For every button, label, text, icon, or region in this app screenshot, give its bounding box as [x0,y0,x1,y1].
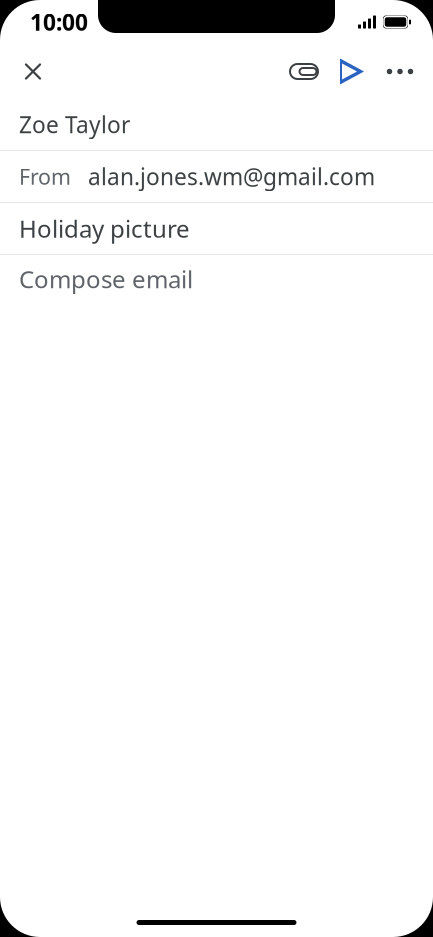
button[interactable]: Holiday picture [0,203,433,254]
button[interactable]: From [0,151,433,202]
staticText: Holiday picture [19,213,190,244]
staticText: alan.jones.wm@gmail.com [88,161,375,191]
button[interactable]: Zoe Taylor [0,99,433,150]
button[interactable]: Compose email [0,255,433,303]
staticText: Zoe Taylor [19,109,130,139]
button[interactable]: More options [376,47,424,95]
button[interactable]: Close [9,47,57,95]
staticText: 10:00 [30,7,88,37]
button[interactable]: Send [328,47,376,95]
button[interactable]: Attach file [280,47,328,95]
staticText: Compose email [19,263,193,295]
staticText: From [19,162,71,191]
